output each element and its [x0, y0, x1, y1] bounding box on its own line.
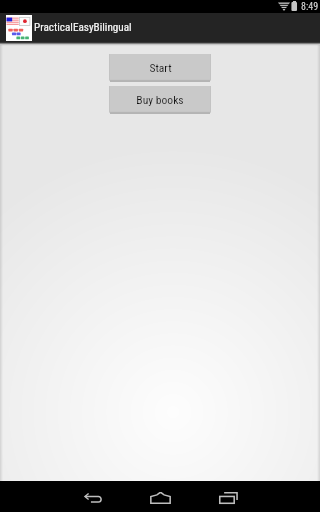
- button[interactable]: Home: [134, 482, 186, 512]
- staticText: Start: [149, 61, 172, 75]
- staticText: PracticalEasyBilingual: [34, 21, 132, 34]
- button[interactable]: Buy books: [109, 86, 211, 114]
- staticText: 8:49: [301, 1, 319, 13]
- button[interactable]: Recent apps: [202, 482, 254, 512]
- button[interactable]: Back: [67, 482, 119, 512]
- staticText: Buy books: [136, 93, 184, 107]
- button[interactable]: Start: [109, 54, 211, 82]
